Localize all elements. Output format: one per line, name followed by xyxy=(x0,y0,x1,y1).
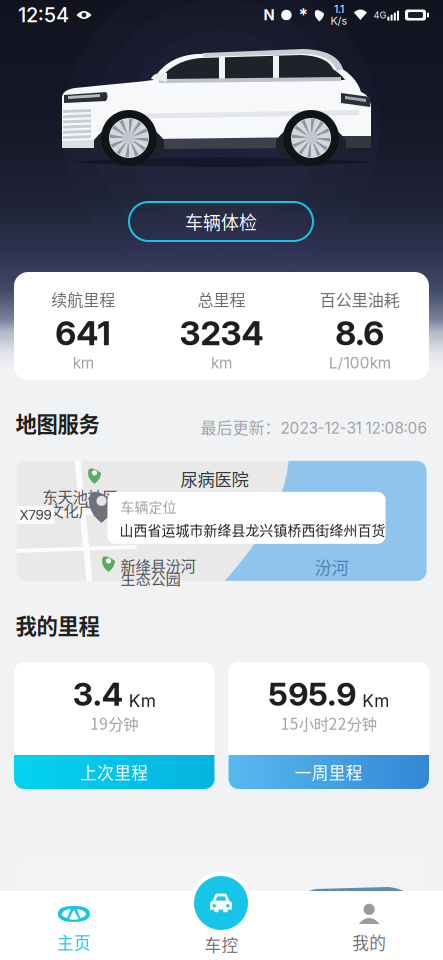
button[interactable]: 车控 xyxy=(148,891,295,960)
staticText: 车辆定位 xyxy=(120,496,176,516)
staticText: 一周里程 xyxy=(295,760,363,784)
staticText: 续航里程 xyxy=(51,287,115,311)
staticText: 上次里程 xyxy=(80,760,148,784)
staticText: * xyxy=(298,4,308,25)
staticText: 山西省运城市新绛县龙兴镇桥西街绛州百货 xyxy=(119,519,385,540)
staticText: 15小时22分钟 xyxy=(281,712,377,734)
staticText: Km xyxy=(362,690,389,711)
staticText: 我的里程 xyxy=(15,610,99,640)
staticText: Km xyxy=(129,690,156,711)
staticText: 1.1 xyxy=(334,3,344,15)
staticText: 3.4 xyxy=(73,675,123,713)
button[interactable]: 车控 xyxy=(190,872,252,934)
staticText: 我的 xyxy=(352,930,386,954)
button[interactable]: 我的 xyxy=(295,891,443,960)
staticText: 总里程 xyxy=(197,287,245,311)
staticText: 地图服务 xyxy=(15,408,99,438)
staticText: 车控 xyxy=(204,932,238,956)
staticText: km xyxy=(211,354,232,372)
button[interactable]: 主页 xyxy=(0,891,148,960)
staticText: 4G xyxy=(373,9,386,21)
staticText: 汾河 xyxy=(314,554,348,579)
button[interactable]: 3.4 xyxy=(14,662,214,789)
staticText: 8.6 xyxy=(335,313,384,353)
button[interactable]: 车辆体检 xyxy=(129,202,313,241)
staticText: km xyxy=(73,354,94,372)
staticText: 12:54 xyxy=(18,3,69,27)
staticText: 19分钟 xyxy=(90,712,138,734)
staticText: 尿病医院 xyxy=(180,466,248,491)
staticText: K/s xyxy=(330,14,347,27)
staticText: 2023-12-31 12:08:06 xyxy=(280,419,427,437)
button[interactable]: 595.9 xyxy=(228,662,429,789)
staticText: 车辆体检 xyxy=(185,208,257,235)
staticText: 595.9 xyxy=(268,675,356,713)
staticText: L/100km xyxy=(329,354,391,372)
staticText: 东天池社区 xyxy=(42,485,117,507)
staticText: 主页 xyxy=(57,930,91,954)
staticText: 新绛县汾河 xyxy=(120,554,195,576)
staticText: N xyxy=(263,6,274,24)
staticText: 641 xyxy=(55,313,111,353)
staticText: X799 xyxy=(19,507,51,523)
staticText: 3234 xyxy=(179,313,263,353)
staticText: 百公里油耗 xyxy=(320,287,400,311)
staticText: 生态公园 xyxy=(120,567,180,589)
staticText: 最后更新： xyxy=(200,415,280,438)
staticText: 文化广场 xyxy=(48,499,108,521)
